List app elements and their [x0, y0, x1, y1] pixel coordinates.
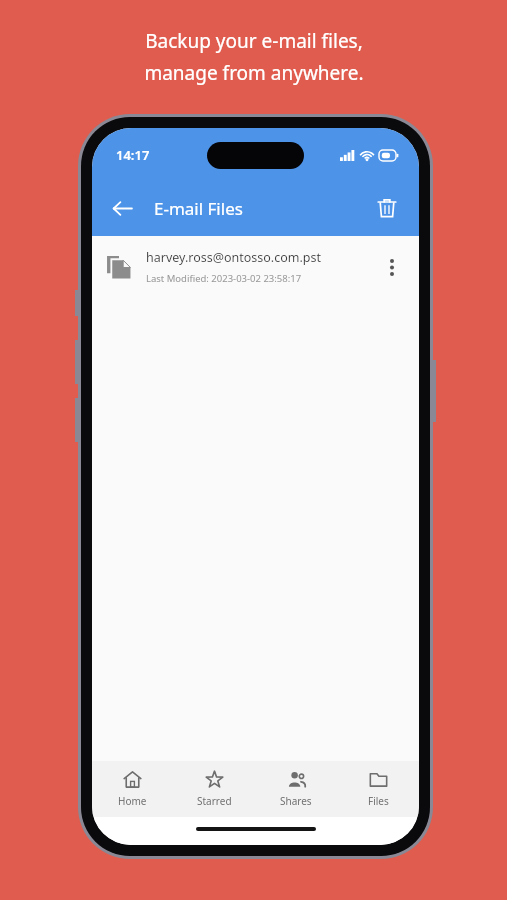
staticText: Shares: [280, 794, 312, 808]
staticText: 14:17: [116, 146, 150, 164]
button[interactable]: Files: [337, 764, 419, 814]
button[interactable]: Home: [92, 764, 173, 814]
staticText: E-mail Files: [154, 197, 243, 220]
button[interactable]: Delete: [365, 186, 409, 230]
staticText: harvey.ross@ontosso.com.pst: [146, 249, 322, 266]
staticText: Backup your e-mail files,: [145, 28, 363, 54]
staticText: Starred: [197, 794, 232, 808]
staticText: manage from anywhere.: [144, 60, 364, 86]
button[interactable]: More options: [373, 248, 411, 286]
staticText: Files: [368, 794, 389, 808]
staticText: Home: [118, 794, 147, 808]
button[interactable]: Shares: [255, 764, 337, 814]
button[interactable]: Back: [100, 186, 144, 230]
button[interactable]: Starred: [173, 764, 255, 814]
button[interactable]: harvey.ross@ontosso.com.pst: [92, 236, 419, 298]
staticText: Last Modified: 2023-03-02 23:58:17: [146, 272, 302, 285]
